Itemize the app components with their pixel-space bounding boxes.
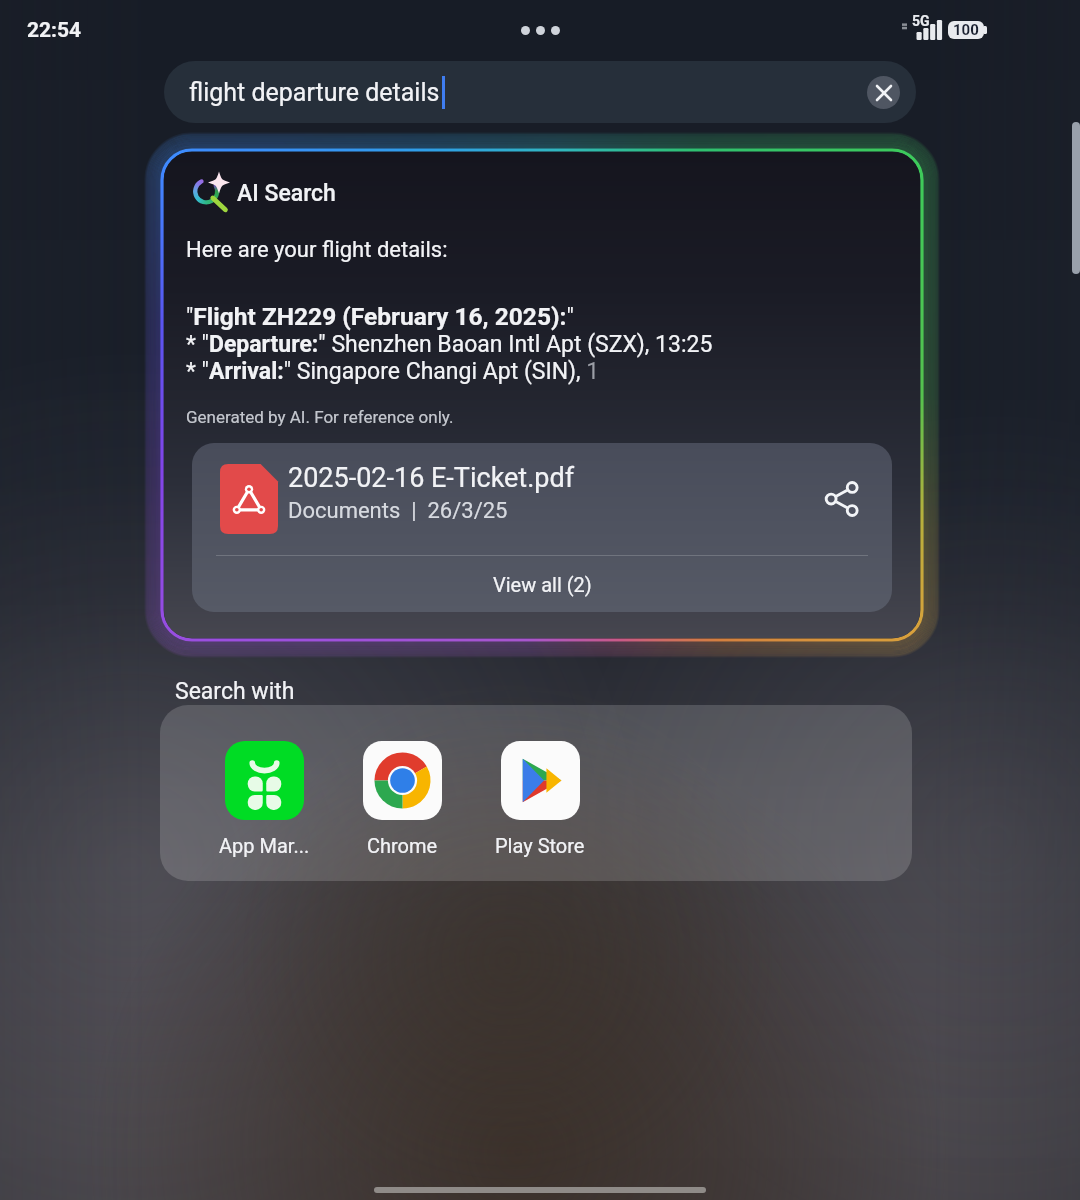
staticText: Generated by AI. For reference only. [186, 407, 454, 427]
staticText: Here are your flight details: [186, 237, 448, 263]
staticText: Play Store [495, 834, 585, 857]
staticText: "Flight ZH229 (February 16, 2025):" [186, 302, 574, 331]
staticText: Chrome [367, 834, 438, 857]
button[interactable]: Chrome [333, 741, 471, 857]
button[interactable]: App Mar... [195, 741, 333, 857]
button[interactable]: View all (2) [192, 556, 892, 612]
staticText: 2025-02-16 E-Ticket.pdf [288, 462, 575, 494]
staticText: flight departure details [189, 78, 440, 107]
staticText: 100 [953, 21, 979, 39]
staticText: * "Departure:" Shenzhen Baoan Intl Apt (… [186, 331, 713, 358]
staticText: View all (2) [493, 573, 592, 596]
button[interactable]: Clear search [867, 76, 900, 109]
button[interactable]: 2025-02-16 E-Ticket.pdf [192, 443, 892, 555]
button[interactable]: Play Store [471, 741, 609, 857]
staticText: * "Arrival:" Singapore Changi Apt (SIN),… [186, 358, 600, 385]
staticText: Search with [175, 678, 295, 705]
button[interactable]: Share [816, 473, 868, 525]
staticText: 22:54 [27, 18, 82, 43]
staticText: Documents | 26/3/25 [288, 498, 508, 524]
button[interactable]: flight departure details [164, 61, 916, 123]
staticText: 5G [912, 13, 930, 29]
staticText: AI Search [237, 180, 336, 207]
staticText: App Mar... [219, 834, 310, 857]
